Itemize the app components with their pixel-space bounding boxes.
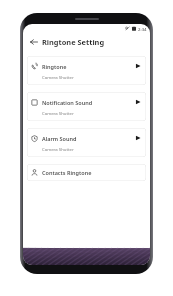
staticText: Camera Shutter: [42, 74, 74, 80]
button[interactable]: Ringtone: [27, 56, 146, 85]
button[interactable]: Play Ringtone: [133, 61, 143, 71]
staticText: Ringtone Setting: [42, 37, 105, 47]
button[interactable]: Play Alarm Sound: [133, 133, 143, 143]
staticText: Camera Shutter: [42, 146, 74, 152]
button[interactable]: Alarm Sound: [27, 128, 146, 157]
button[interactable]: Notification Sound: [27, 92, 146, 121]
staticText: Camera Shutter: [42, 110, 74, 116]
button[interactable]: Back: [27, 35, 40, 48]
staticText: Ringtone: [42, 63, 67, 70]
staticText: Contacts Ringtone: [42, 169, 92, 176]
staticText: 2:34: [138, 26, 147, 32]
staticText: Alarm Sound: [42, 135, 77, 142]
button[interactable]: Contacts Ringtone: [27, 164, 146, 181]
staticText: Notification Sound: [42, 99, 93, 106]
button[interactable]: Play Notification Sound: [133, 97, 143, 107]
